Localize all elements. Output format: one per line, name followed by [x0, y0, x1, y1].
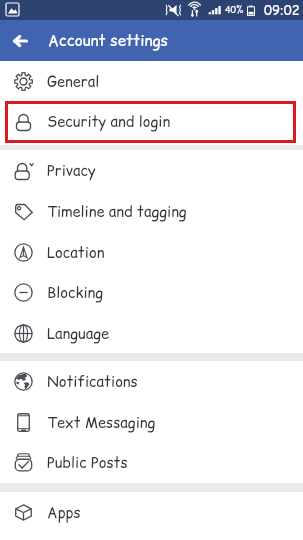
staticText: Privacy: [47, 160, 96, 181]
staticText: 09:02: [264, 1, 300, 19]
staticText: Location: [47, 242, 105, 263]
staticText: Account settings: [48, 30, 168, 51]
staticText: Text Messaging: [47, 412, 156, 433]
button[interactable]: General: [0, 61, 303, 101]
button[interactable]: Language: [0, 313, 303, 353]
button[interactable]: Blocking: [0, 272, 303, 313]
button[interactable]: Security and login: [0, 101, 303, 141]
button[interactable]: Text Messaging: [0, 402, 303, 442]
button[interactable]: Location: [0, 232, 303, 272]
staticText: Apps: [47, 502, 81, 523]
staticText: 40%: [225, 4, 244, 17]
staticText: Public Posts: [47, 452, 128, 473]
button[interactable]: Back: [0, 20, 40, 61]
button[interactable]: Timeline and tagging: [0, 191, 303, 232]
staticText: Notifications: [47, 371, 138, 392]
staticText: Language: [47, 323, 110, 344]
staticText: General: [47, 71, 100, 92]
staticText: Security and login: [47, 111, 171, 132]
staticText: Timeline and tagging: [47, 201, 187, 222]
staticText: Blocking: [47, 282, 104, 303]
button[interactable]: Notifications: [0, 361, 303, 402]
button[interactable]: Apps: [0, 492, 303, 532]
button[interactable]: Privacy: [0, 150, 303, 191]
button[interactable]: Public Posts: [0, 442, 303, 483]
